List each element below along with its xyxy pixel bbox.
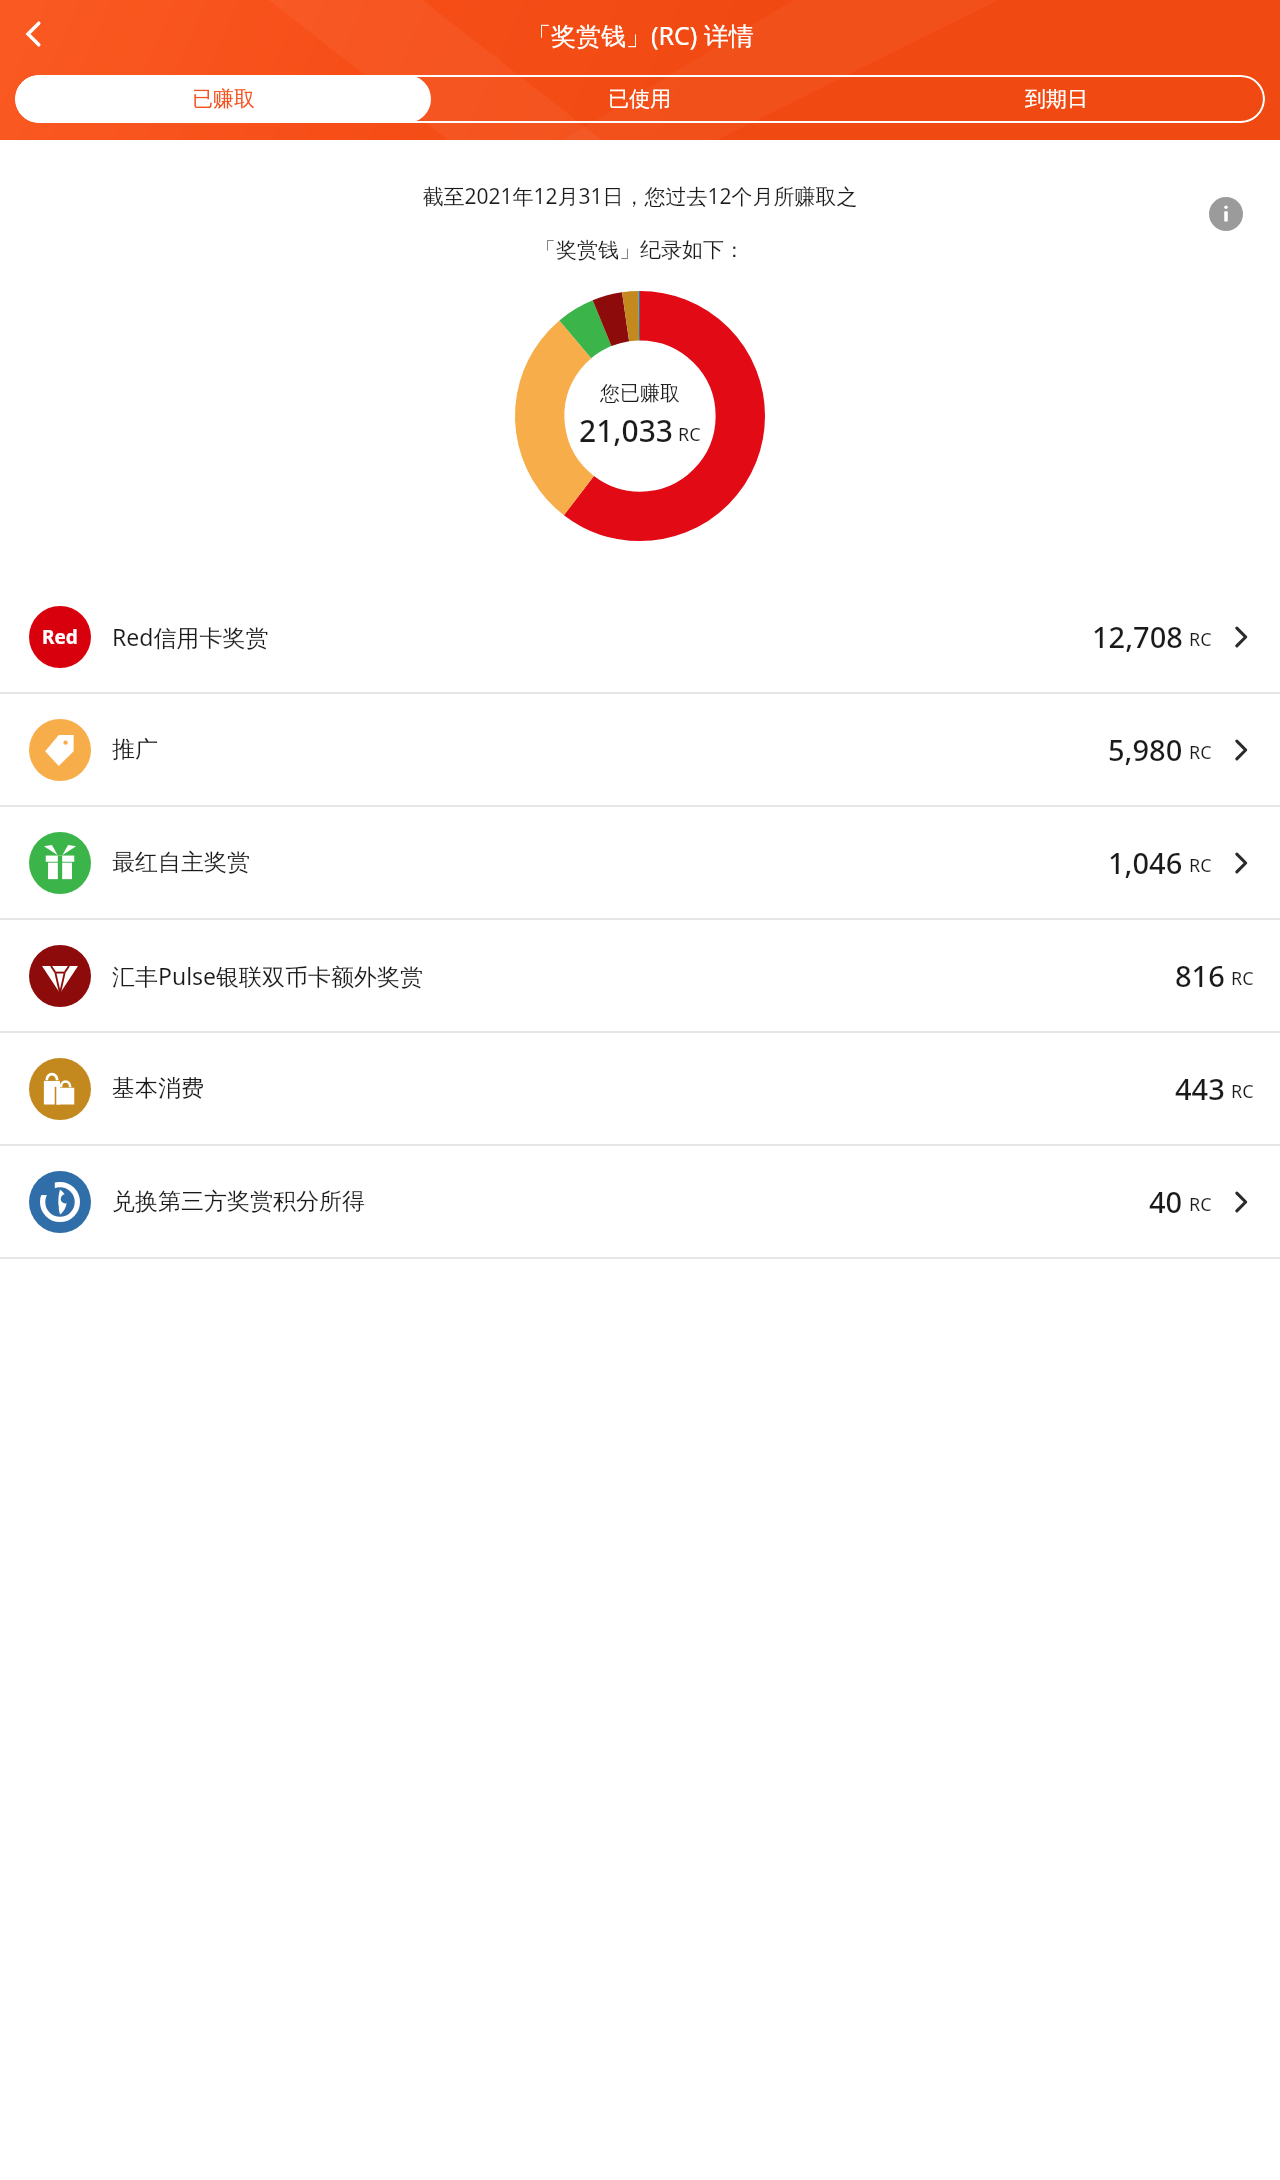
button[interactable]: 推广 bbox=[0, 694, 1280, 805]
button[interactable]: 已赚取 bbox=[15, 75, 431, 123]
button[interactable]: Information bbox=[1209, 197, 1243, 231]
staticText: 「奖赏钱」(RC) 详情 bbox=[526, 18, 754, 52]
staticText: Red bbox=[42, 624, 78, 650]
staticText: 已使用 bbox=[608, 86, 671, 112]
staticText: 21,033 bbox=[579, 410, 673, 451]
staticText: RC bbox=[1189, 627, 1212, 652]
button[interactable]: Red bbox=[0, 581, 1280, 692]
staticText: 5,980 bbox=[1108, 730, 1183, 769]
staticText: 推广 bbox=[112, 735, 158, 764]
staticText: 最红自主奖赏 bbox=[112, 848, 250, 877]
staticText: RC bbox=[1231, 1079, 1254, 1104]
button[interactable]: 已使用 bbox=[431, 75, 848, 123]
button[interactable]: Back bbox=[6, 6, 62, 62]
staticText: 1,046 bbox=[1108, 843, 1183, 882]
staticText: RC bbox=[1231, 966, 1254, 991]
staticText: RC bbox=[1189, 1192, 1212, 1217]
staticText: 40 bbox=[1149, 1182, 1183, 1221]
staticText: 12,708 bbox=[1092, 617, 1183, 656]
button[interactable]: 基本消费 bbox=[0, 1033, 1280, 1144]
staticText: 443 bbox=[1175, 1069, 1225, 1108]
staticText: 816 bbox=[1175, 956, 1225, 995]
staticText: 「奖赏钱」纪录如下： bbox=[535, 237, 745, 263]
staticText: RC bbox=[678, 422, 701, 447]
staticText: 到期日 bbox=[1025, 86, 1088, 112]
staticText: RC bbox=[1189, 853, 1212, 878]
button[interactable]: 到期日 bbox=[848, 75, 1265, 123]
staticText: 您已赚取 bbox=[600, 381, 680, 406]
button[interactable]: 汇丰Pulse银联双币卡额外奖赏 bbox=[0, 920, 1280, 1031]
staticText: 已赚取 bbox=[192, 86, 255, 112]
staticText: 汇丰Pulse银联双币卡额外奖赏 bbox=[112, 960, 424, 991]
staticText: 兑换第三方奖赏积分所得 bbox=[112, 1187, 365, 1216]
staticText: 基本消费 bbox=[112, 1074, 204, 1103]
button[interactable]: 兑换第三方奖赏积分所得 bbox=[0, 1146, 1280, 1257]
button[interactable]: 最红自主奖赏 bbox=[0, 807, 1280, 918]
staticText: RC bbox=[1189, 740, 1212, 765]
staticText: Red信用卡奖赏 bbox=[112, 621, 269, 652]
staticText: 截至2021年12月31日，您过去12个月所赚取之 bbox=[422, 182, 858, 211]
